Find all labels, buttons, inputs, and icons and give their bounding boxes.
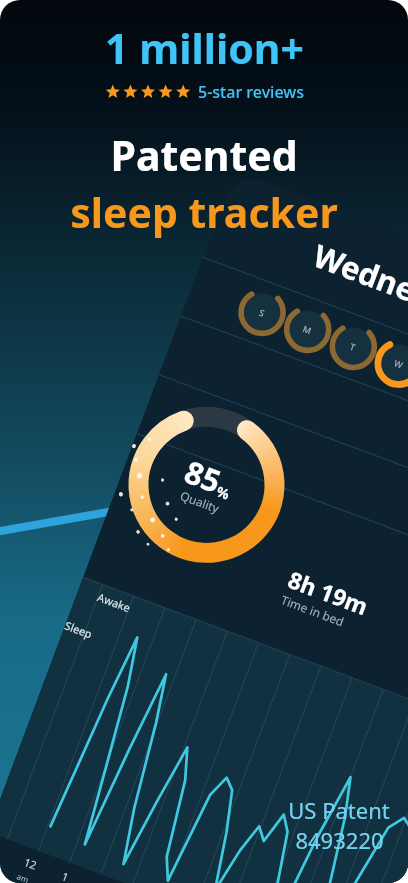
button[interactable]: 5 star rating bbox=[104, 81, 304, 103]
staticText: Patented bbox=[110, 127, 298, 183]
staticText: 1 million+ bbox=[105, 20, 304, 76]
staticText: 8493220 bbox=[295, 825, 384, 855]
other: 5 star rating bbox=[104, 84, 192, 100]
staticText: US Patent bbox=[288, 795, 390, 825]
button[interactable]: US Patent bbox=[288, 795, 390, 855]
staticText: 5-star reviews bbox=[198, 81, 304, 103]
staticText: sleep tracker bbox=[70, 184, 338, 240]
